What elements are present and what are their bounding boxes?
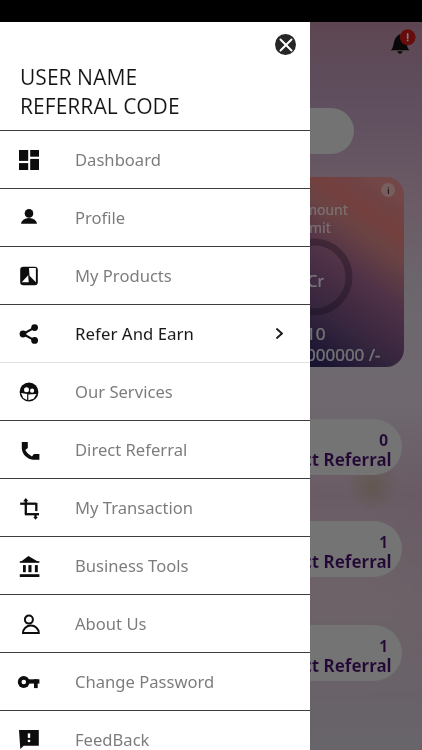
button[interactable]: My Products [0, 247, 310, 304]
button[interactable]: Close [275, 34, 296, 55]
button[interactable]: Our Services [0, 363, 310, 420]
staticText: Business Tools [75, 554, 189, 577]
staticText: Our Services [75, 380, 173, 403]
staticText: 10 [306, 322, 326, 345]
staticText: Direct Referral [268, 654, 392, 677]
button[interactable]: Direct Referral [0, 421, 310, 478]
staticText: Direct Referral [268, 550, 392, 573]
staticText: Refer And Earn [75, 322, 194, 345]
staticText: My Products [75, 264, 172, 287]
button[interactable]: Info [381, 183, 395, 197]
button[interactable]: Refer And Earn [0, 305, 310, 362]
button[interactable]: FeedBack [0, 711, 310, 750]
button[interactable]: Change Password [0, 653, 310, 710]
staticText: Loan Amount [259, 200, 348, 219]
staticText: 1 [379, 531, 389, 553]
staticText: 1 Cr [294, 270, 325, 292]
staticText: Limit [298, 218, 331, 237]
staticText: 1 [379, 635, 389, 657]
staticText: My Transaction [75, 496, 194, 519]
button[interactable]: Business Tools [0, 537, 310, 594]
staticText: USER NAME [20, 63, 138, 92]
staticText: Direct Referral [268, 448, 392, 471]
staticText: REFERRAL CODE [20, 92, 180, 121]
staticText: Change Password [75, 670, 215, 693]
staticText: FeedBack [75, 728, 150, 750]
staticText: About Us [75, 612, 147, 635]
button[interactable]: My Transaction [0, 479, 310, 536]
staticText: Direct Referral [75, 438, 188, 461]
staticText: Profile [75, 206, 126, 229]
button[interactable]: Dashboard [0, 131, 310, 188]
button[interactable]: Profile [0, 189, 310, 246]
staticText: 000000 /- [306, 343, 381, 366]
staticText: Dashboard [75, 148, 161, 171]
button[interactable]: About Us [0, 595, 310, 652]
staticText: 0 [379, 429, 389, 451]
staticText: i [387, 184, 390, 196]
